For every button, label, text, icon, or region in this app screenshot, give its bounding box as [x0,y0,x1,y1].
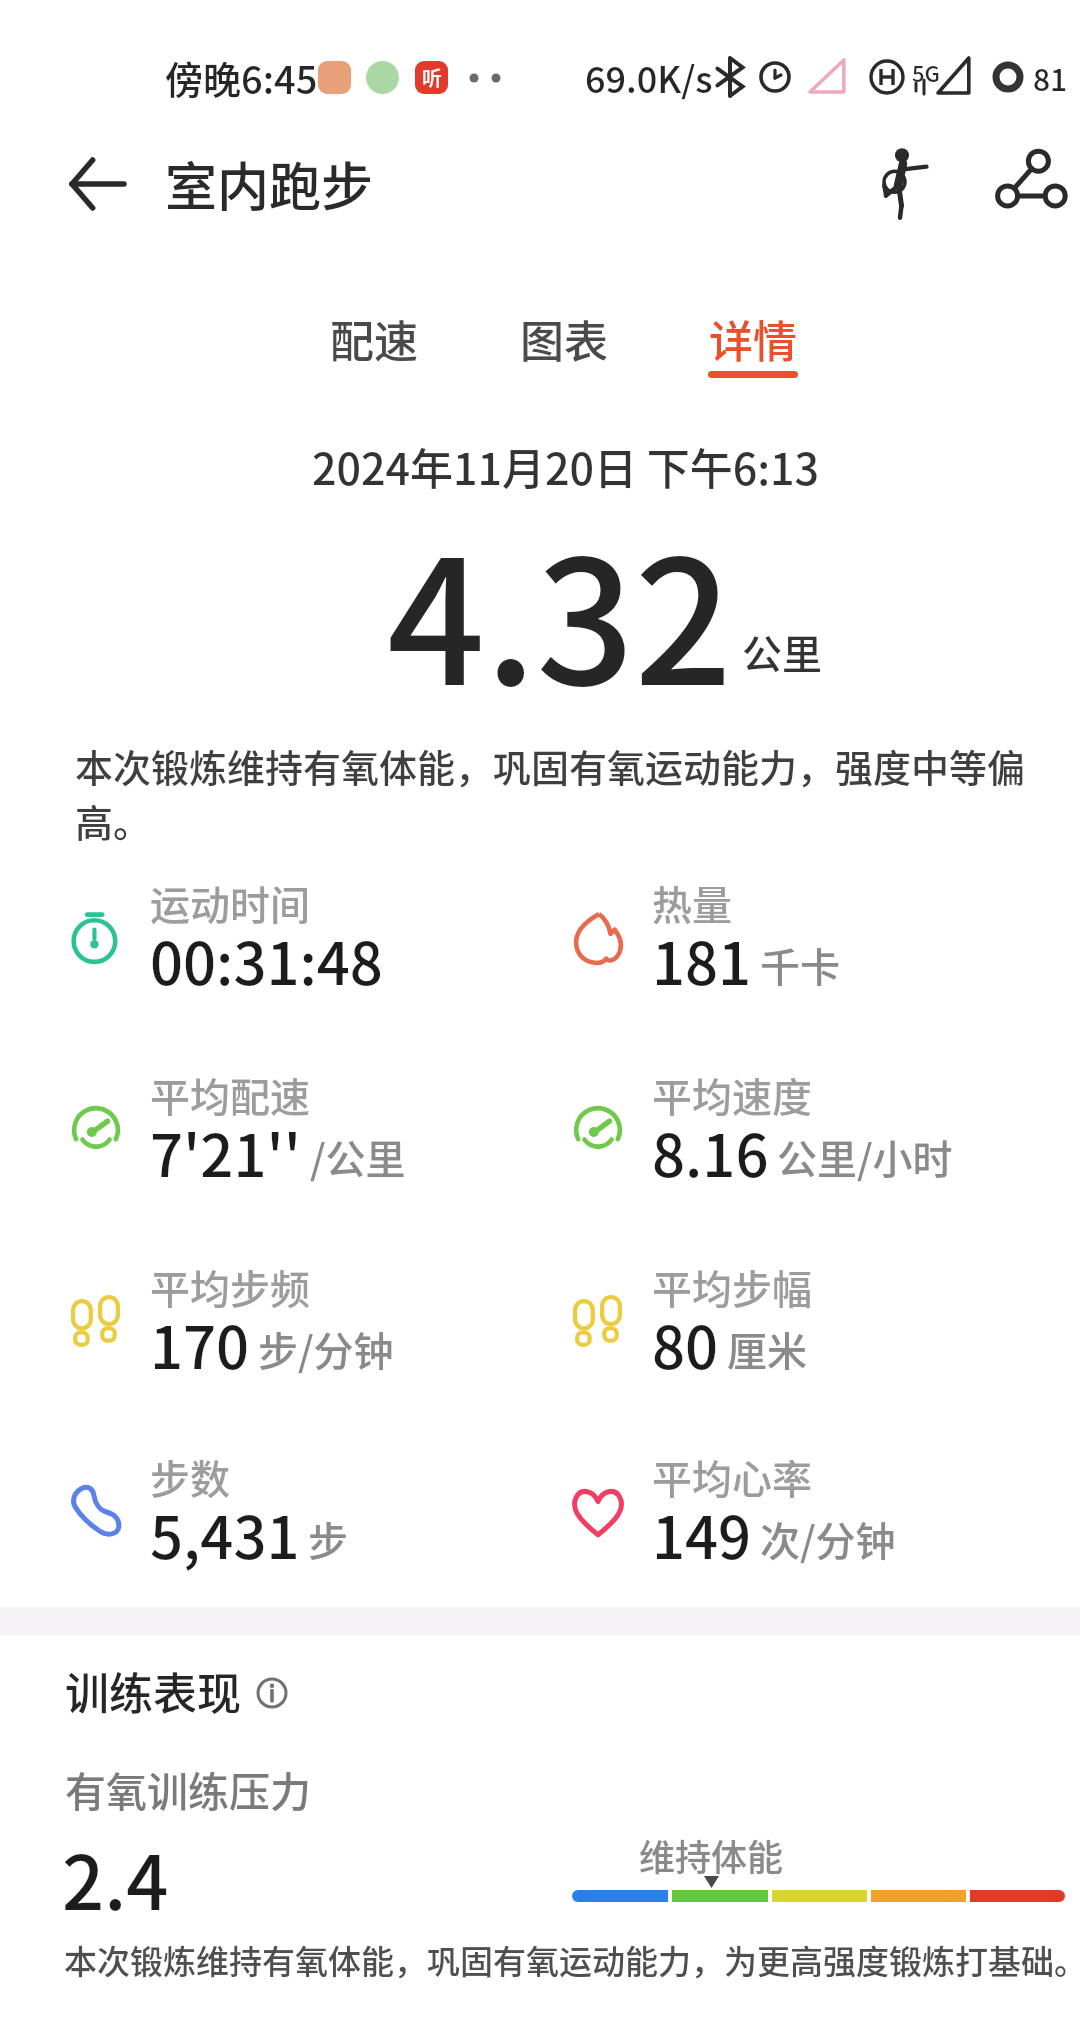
staticText: 7'21'' [150,1110,302,1194]
staticText: 00:31:48 [150,918,383,1002]
staticText: 维持体能 [639,1829,784,1881]
staticText: 训练表现 [65,1659,241,1723]
staticText: 80 [652,1302,719,1386]
button[interactable] [980,140,1080,228]
staticText: 室内跑步 [165,146,374,221]
staticText: 平均步幅 [652,1258,812,1316]
button[interactable] [70,1061,510,1191]
button[interactable] [70,869,510,999]
staticText: 8.16 [652,1110,769,1194]
staticText: 4.32 [387,485,733,734]
staticText: 2024年11月20日 下午6:13 [312,435,820,497]
staticText: 149 [652,1492,752,1576]
staticText: 公里/小时 [777,1128,953,1186]
staticText: 平均步频 [150,1258,310,1316]
staticText: 公里 [742,623,822,681]
staticText: 步数 [150,1448,230,1506]
button[interactable]: 配速 [294,301,454,376]
staticText: 详情 [709,307,797,371]
staticText: 配速 [330,307,418,371]
staticText: 图表 [520,307,608,371]
button[interactable]: 详情 [673,301,833,376]
staticText: 步/分钟 [258,1320,394,1378]
staticText: 平均配速 [150,1066,310,1124]
staticText: 平均心率 [652,1448,812,1506]
button[interactable]: 图表 [484,301,644,376]
staticText: 厘米 [727,1320,807,1378]
button[interactable] [572,869,1012,999]
staticText: 本次锻炼维持有氧体能，巩固有氧运动能力，为更高强度锻炼打基础。 [64,1936,1080,1984]
staticText: 步 [308,1510,348,1568]
staticText: 5G [912,56,940,88]
button[interactable] [572,1253,1012,1383]
staticText: 次/分钟 [760,1510,896,1568]
staticText: 傍晚6:45 [165,50,318,105]
staticText: 181 [652,918,752,1002]
staticText: 5,431 [150,1492,300,1576]
button[interactable] [70,1253,510,1383]
button[interactable] [572,1443,1012,1573]
staticText: 69.0K/s [585,51,713,103]
staticText: 平均速度 [652,1066,812,1124]
staticText: /公里 [310,1128,406,1186]
button[interactable] [256,1677,288,1709]
button[interactable] [70,1443,510,1573]
button[interactable] [572,1061,1012,1191]
staticText: 有氧训练压力 [65,1759,311,1818]
staticText: 2.4 [62,1824,169,1931]
staticText: 听 [422,63,442,92]
staticText: 170 [150,1302,250,1386]
staticText: 千卡 [760,936,840,994]
button[interactable] [50,150,140,220]
staticText: 运动时间 [150,874,310,932]
staticText: 热量 [652,874,732,932]
button[interactable] [858,140,948,228]
staticText: 81 [1033,56,1068,99]
staticText: 本次锻炼维持有氧体能，巩固有氧运动能力，强度中等偏高。 [75,738,1035,848]
